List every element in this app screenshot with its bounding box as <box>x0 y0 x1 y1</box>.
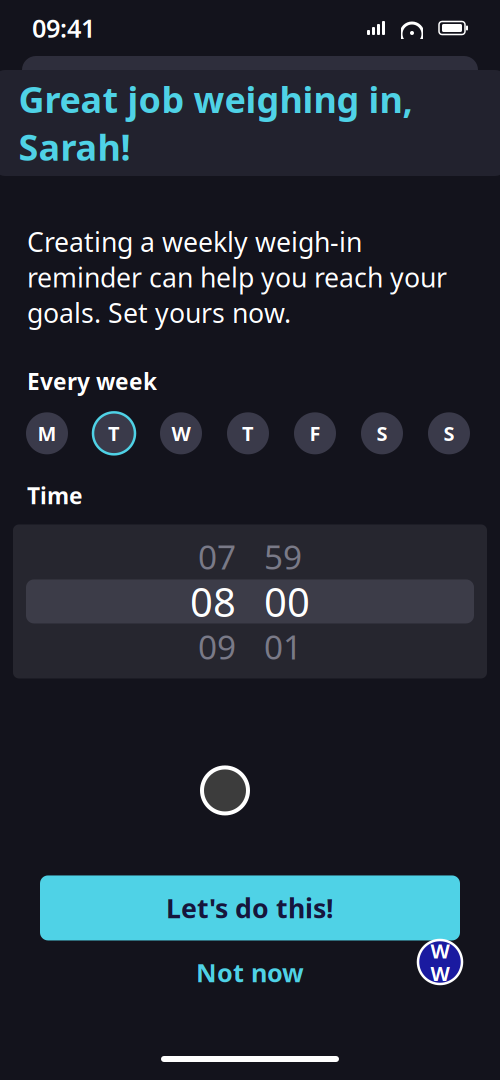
button[interactable]: WW <box>418 940 462 984</box>
staticText: W <box>430 937 449 964</box>
staticText: W <box>430 960 449 987</box>
staticText: 59 <box>264 534 302 579</box>
button[interactable]: Not now <box>0 954 500 990</box>
button[interactable]: W <box>160 412 202 454</box>
staticText: W <box>171 420 190 447</box>
button[interactable]: M <box>26 412 68 454</box>
button[interactable]: T <box>93 412 135 454</box>
button[interactable]: F <box>294 412 336 454</box>
staticText: Every week <box>27 366 157 396</box>
staticText: 07 <box>198 534 236 579</box>
staticText: Not now <box>196 956 304 989</box>
button[interactable]: T <box>227 412 269 454</box>
staticText: Time <box>27 480 83 510</box>
staticText: 01 <box>264 624 302 669</box>
staticText: 00 <box>264 575 310 628</box>
staticText: F <box>309 420 320 447</box>
staticText: 09 <box>198 624 236 669</box>
staticText: 09:41 <box>32 11 95 45</box>
staticText: 08 <box>190 575 236 628</box>
staticText: S <box>443 420 454 447</box>
staticText: Great job weighing in, Sarah! <box>18 75 412 171</box>
button[interactable]: Let's do this! <box>40 875 460 940</box>
staticText: T <box>242 420 254 447</box>
staticText: T <box>108 420 120 447</box>
staticText: Creating a weekly weigh-in reminder can … <box>27 224 447 330</box>
staticText: M <box>37 420 56 447</box>
staticText: S <box>376 420 387 447</box>
staticText: Let's do this! <box>166 890 334 926</box>
button[interactable]: S <box>361 412 403 454</box>
button[interactable]: S <box>428 412 470 454</box>
